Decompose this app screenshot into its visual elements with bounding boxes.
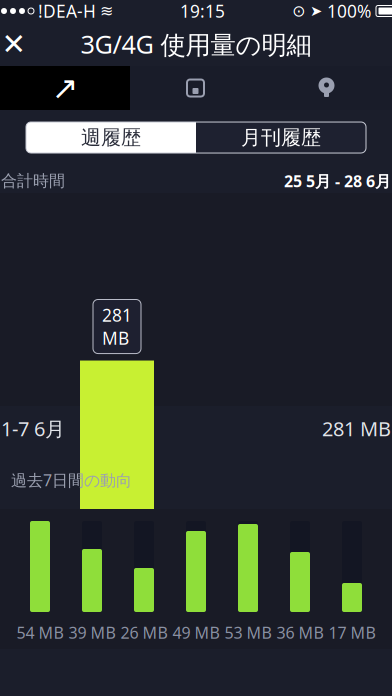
button[interactable]: Close <box>0 22 44 66</box>
staticText: 100% <box>327 0 371 22</box>
staticText: 週履歴 <box>81 125 141 150</box>
staticText: 17 MB <box>328 622 375 643</box>
staticText: 月刊履歴 <box>241 125 321 150</box>
staticText: 合計時間 <box>1 171 65 191</box>
staticText: 54 MB <box>16 622 63 643</box>
staticText: 39 MB <box>68 622 115 643</box>
button[interactable]: Calendar <box>130 66 261 110</box>
staticText: 26 MB <box>120 622 167 643</box>
staticText: ⊙ <box>292 2 305 20</box>
staticText: 3G/4G 使用量の明細 <box>80 27 311 61</box>
staticText: 1-7 6月 <box>1 415 65 442</box>
staticText: 281 MB <box>322 415 391 442</box>
staticText: ➤ <box>310 3 322 19</box>
staticText: 過去7日間の動向 <box>11 469 132 491</box>
button[interactable]: Usage chart <box>0 66 130 110</box>
button[interactable]: Location <box>261 66 392 110</box>
staticText: 25 5月 - 28 6月 <box>284 170 391 192</box>
staticText: 19:15 <box>180 0 225 22</box>
button[interactable]: 週履歴 <box>26 122 196 153</box>
staticText: !DEA-H <box>38 0 96 22</box>
staticText: ↗ <box>51 70 78 106</box>
staticText: ✕ <box>1 27 26 61</box>
staticText: 36 MB <box>276 622 323 643</box>
staticText: 49 MB <box>172 622 219 643</box>
staticText: 281 MB <box>102 303 132 349</box>
staticText: 53 MB <box>224 622 271 643</box>
button[interactable]: 月刊履歴 <box>196 122 366 153</box>
staticText: ≋ <box>100 2 113 20</box>
